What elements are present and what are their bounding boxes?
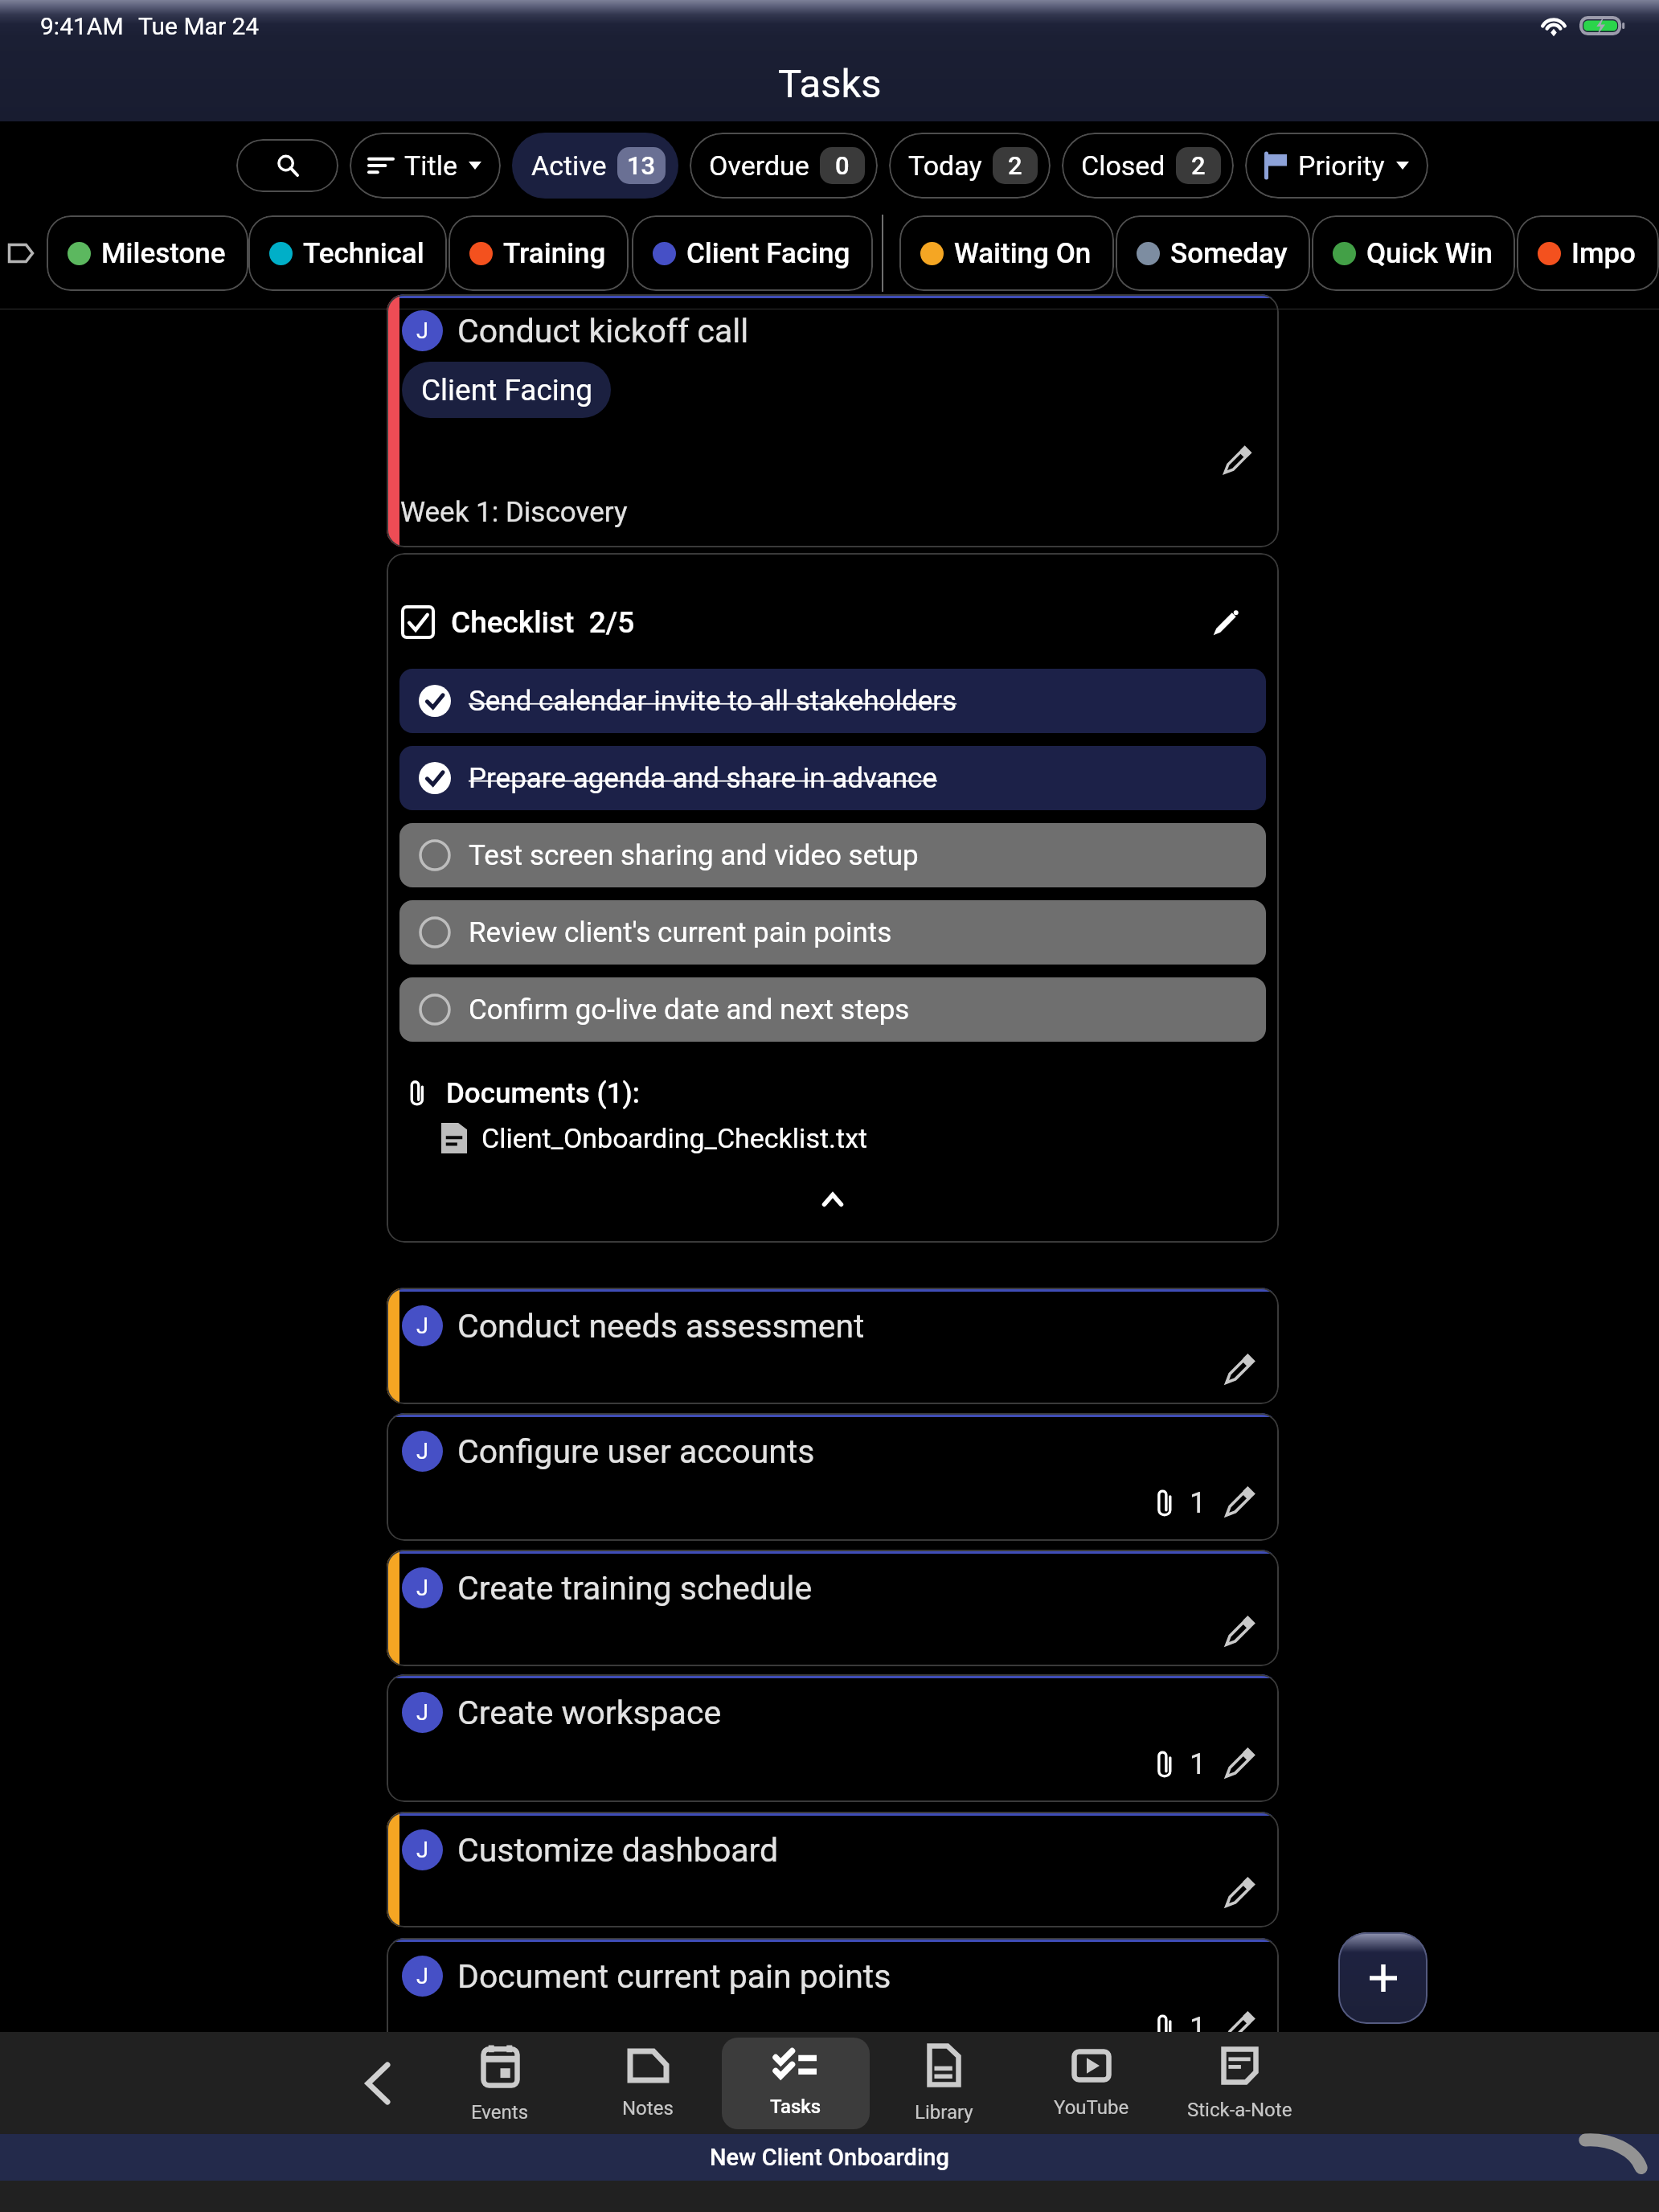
staticText: Milestone <box>101 237 226 270</box>
button[interactable]: Notes <box>574 2038 722 2129</box>
button[interactable]: Library <box>870 2038 1018 2129</box>
button[interactable]: YouTube <box>1018 2038 1165 2129</box>
staticText: 13 <box>627 151 656 180</box>
button[interactable]: Prepare agenda and share in advance <box>399 746 1266 810</box>
button[interactable]: Active <box>512 133 678 199</box>
staticText: Configure user accounts <box>457 1432 815 1471</box>
button[interactable]: Milestone <box>47 215 248 291</box>
staticText: Test screen sharing and video setup <box>469 839 919 872</box>
staticText: J <box>416 318 428 344</box>
staticText: Checklist 2/5 <box>451 605 635 640</box>
other: Edit <box>1226 1358 1251 1383</box>
staticText: 2 <box>1191 151 1206 180</box>
staticText: Create workspace <box>457 1694 722 1732</box>
staticText: Prepare agenda and share in advance <box>469 762 937 795</box>
button[interactable]: Add task <box>1338 1932 1428 2024</box>
button[interactable]: Back <box>346 2043 410 2124</box>
button[interactable]: Overdue <box>690 133 878 199</box>
other: Edit <box>1226 1620 1251 1645</box>
button[interactable]: Test screen sharing and video setup <box>399 823 1266 887</box>
button[interactable]: J <box>387 1288 1279 1404</box>
staticText: J <box>416 1964 428 1989</box>
button[interactable]: Important <box>1517 215 1659 291</box>
staticText: Documents (1): <box>446 1077 641 1109</box>
button[interactable]: Send calendar invite to all stakeholders <box>399 669 1266 733</box>
button[interactable]: Today <box>889 133 1051 199</box>
button[interactable]: J <box>387 1550 1279 1666</box>
staticText: Tue Mar 24 <box>138 12 260 40</box>
staticText: Title <box>404 150 457 182</box>
button[interactable]: Someday <box>1116 215 1310 291</box>
staticText: 1 <box>1190 1747 1206 1781</box>
staticText: Client_Onboarding_Checklist.txt <box>481 1122 868 1154</box>
staticText: J <box>416 1313 428 1339</box>
staticText: Library <box>915 2101 973 2124</box>
button[interactable]: Priority <box>1245 133 1428 199</box>
staticText: Waiting On <box>954 237 1092 270</box>
button[interactable]: Quick Win <box>1312 215 1515 291</box>
staticText: Priority <box>1298 150 1385 182</box>
button[interactable]: J <box>387 294 1279 547</box>
staticText: Customize dashboard <box>457 1831 779 1870</box>
staticText: J <box>416 1575 428 1601</box>
staticText: Tasks <box>778 61 882 107</box>
button[interactable]: Review client's current pain points <box>399 900 1266 965</box>
staticText: Events <box>471 2101 529 2124</box>
other: Edit <box>1226 2015 1251 2032</box>
staticText: J <box>416 1439 428 1464</box>
staticText: Today <box>908 150 982 182</box>
staticText: 2 <box>1008 151 1022 180</box>
button[interactable]: Tasks <box>722 2038 870 2129</box>
staticText: J <box>416 1837 428 1863</box>
staticText: Create training schedule <box>457 1569 813 1608</box>
staticText: 0 <box>835 151 850 180</box>
button[interactable]: Closed <box>1062 133 1234 199</box>
staticText: Conduct needs assessment <box>457 1307 865 1346</box>
staticText: Review client's current pain points <box>469 916 892 949</box>
button[interactable]: Confirm go-live date and next steps <box>399 977 1266 1042</box>
staticText: Notes <box>622 2097 674 2120</box>
staticText: Client Facing <box>421 373 592 408</box>
other: Edit <box>1226 1490 1251 1516</box>
other: Edit <box>1226 1881 1251 1907</box>
staticText: Week 1: Discovery <box>400 496 628 529</box>
button[interactable]: Stick-a-Note <box>1165 2038 1313 2129</box>
staticText: Active <box>531 150 607 182</box>
button[interactable]: Collapse <box>797 1178 869 1220</box>
staticText: Client Facing <box>686 237 850 270</box>
staticText: Important <box>1571 237 1636 270</box>
staticText: 1 <box>1190 2011 1206 2032</box>
staticText: Technical <box>303 237 424 270</box>
button[interactable]: J <box>387 1413 1279 1541</box>
button[interactable]: Client_Onboarding_Checklist.txt <box>441 1120 868 1156</box>
staticText: Closed <box>1081 150 1165 182</box>
button[interactable]: Events <box>426 2038 574 2129</box>
button[interactable]: Client Facing <box>632 215 873 291</box>
staticText: 9:41AM <box>40 12 124 40</box>
staticText: 1 <box>1190 1486 1206 1520</box>
other: Edit <box>1224 449 1248 473</box>
staticText: Stick-a-Note <box>1187 2099 1292 2121</box>
staticText: Training <box>503 237 606 270</box>
button[interactable]: Technical <box>248 215 447 291</box>
other: Edit checklist <box>1213 609 1239 636</box>
staticText: YouTube <box>1054 2096 1129 2119</box>
staticText: Send calendar invite to all stakeholders <box>469 685 957 718</box>
staticText: Someday <box>1170 237 1288 270</box>
button[interactable]: Title <box>350 133 501 199</box>
staticText: Conduct kickoff call <box>457 312 749 350</box>
button[interactable]: Training <box>449 215 629 291</box>
button[interactable]: J <box>387 1812 1279 1927</box>
other: Edit <box>1226 1751 1251 1777</box>
staticText: Quick Win <box>1366 237 1493 270</box>
button[interactable]: J <box>387 1938 1279 2032</box>
staticText: Tasks <box>770 2095 821 2118</box>
staticText: New Client Onboarding <box>710 2144 949 2171</box>
button[interactable]: Search <box>236 139 338 192</box>
button[interactable]: Waiting On <box>899 215 1114 291</box>
staticText: Overdue <box>709 150 809 182</box>
staticText: Confirm go-live date and next steps <box>469 993 910 1026</box>
staticText: J <box>416 1700 428 1726</box>
button[interactable]: J <box>387 1674 1279 1802</box>
staticText: Document current pain points <box>457 1957 891 1996</box>
